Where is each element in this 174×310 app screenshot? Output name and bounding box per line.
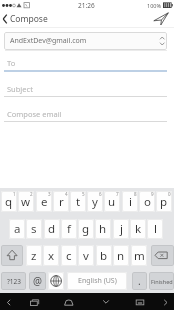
button[interactable]: p (156, 191, 172, 212)
staticText: j (120, 221, 123, 237)
button[interactable] (1, 245, 23, 266)
staticText: English (US) (78, 276, 117, 286)
staticText: s (31, 221, 37, 237)
button[interactable]: f (61, 219, 77, 239)
button[interactable]: e (36, 191, 52, 212)
staticText: 21:26 (78, 1, 95, 10)
staticText: e (41, 194, 48, 210)
staticText: g (82, 221, 90, 237)
staticText: 4 (65, 191, 68, 197)
button[interactable]: l (147, 219, 163, 239)
staticText: u (108, 194, 116, 210)
staticText: 1 (13, 191, 16, 197)
button[interactable]: c (61, 245, 77, 266)
staticText: 100% (147, 2, 162, 9)
button[interactable]: z (26, 245, 42, 266)
button[interactable]: AndExtDev@gmail.com (4, 32, 167, 50)
button[interactable]: d (44, 219, 60, 239)
button[interactable] (48, 272, 64, 290)
staticText: r (59, 194, 64, 210)
button[interactable]: h (95, 219, 111, 239)
button[interactable] (4, 54, 167, 71)
button[interactable]: n (113, 245, 129, 266)
button[interactable]: k (130, 219, 146, 239)
staticText: l (154, 221, 157, 237)
button[interactable]: t (70, 191, 86, 212)
staticText: b (100, 248, 108, 264)
staticText: t (76, 194, 81, 210)
button[interactable]: o (139, 191, 155, 212)
staticText: 6 (99, 191, 102, 197)
staticText: h (99, 221, 107, 237)
staticText: y (92, 194, 98, 210)
button[interactable]: . (132, 272, 147, 290)
staticText: m (134, 248, 145, 264)
button[interactable]: q (1, 191, 17, 212)
staticText: Compose (10, 13, 48, 25)
staticText: v (83, 248, 89, 264)
staticText: ?123 (7, 277, 21, 286)
button[interactable] (0, 9, 52, 27)
staticText: . (138, 274, 141, 288)
button[interactable]: w (18, 191, 34, 212)
button[interactable]: x (43, 245, 59, 266)
staticText: 9 (151, 191, 154, 197)
staticText: d (48, 221, 56, 237)
staticText: k (135, 221, 142, 237)
staticText: 0 (168, 191, 171, 197)
staticText: w (21, 194, 31, 210)
staticText: o (144, 194, 151, 210)
button[interactable]: j (113, 219, 129, 239)
button[interactable]: @ (29, 272, 46, 290)
button[interactable]: s (26, 219, 42, 239)
staticText: 8 (134, 191, 137, 197)
button[interactable]: a (9, 219, 25, 239)
button[interactable]: r (53, 191, 69, 212)
button[interactable] (4, 105, 167, 121)
staticText: 2 (30, 191, 33, 197)
staticText: 3 (48, 191, 51, 197)
staticText: Finished (151, 278, 173, 285)
staticText: c (66, 248, 72, 264)
staticText: 5 (82, 191, 85, 197)
button[interactable]: u (104, 191, 120, 212)
button[interactable]: v (78, 245, 94, 266)
button[interactable]: b (96, 245, 112, 266)
button[interactable] (151, 245, 174, 266)
button[interactable]: g (78, 219, 94, 239)
staticText: z (31, 248, 37, 264)
button[interactable]: ?123 (1, 272, 26, 290)
staticText: 7 (116, 191, 119, 197)
staticText: f (67, 221, 71, 237)
button[interactable]: y (87, 191, 103, 212)
staticText: p (160, 194, 168, 210)
staticText: n (117, 248, 125, 264)
button[interactable]: Finished (149, 272, 174, 290)
staticText: Compose email (7, 109, 62, 119)
staticText: x (48, 248, 55, 264)
staticText: @ (33, 274, 42, 288)
button[interactable]: m (131, 245, 147, 266)
staticText: a (14, 221, 21, 237)
staticText: q (5, 194, 13, 210)
button[interactable]: i (122, 191, 138, 212)
staticText: Subject (7, 84, 33, 94)
staticText: To (7, 58, 16, 68)
staticText: i (129, 194, 132, 210)
staticText: AndExtDev@gmail.com (10, 36, 87, 46)
button[interactable] (0, 293, 174, 310)
button[interactable] (150, 9, 174, 27)
button[interactable]: English (US) (67, 272, 127, 290)
button[interactable] (4, 80, 167, 96)
